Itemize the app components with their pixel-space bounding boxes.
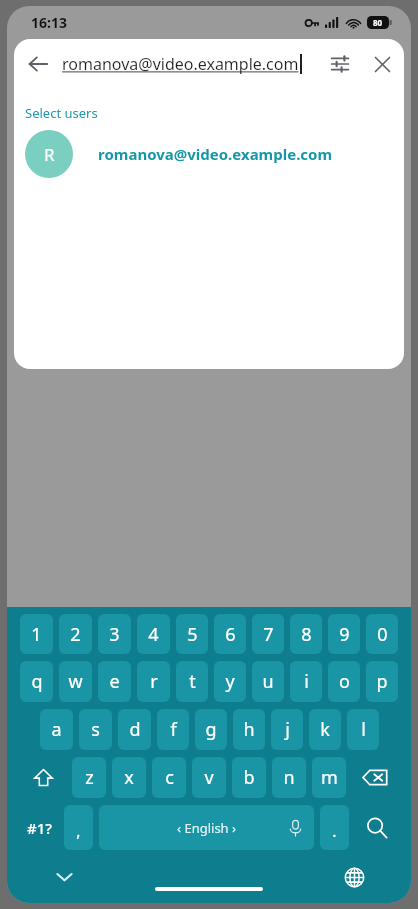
staticText: j [285, 717, 290, 742]
staticText: x [124, 765, 134, 790]
staticText: r [150, 669, 158, 694]
button[interactable]: Clear [360, 42, 404, 86]
staticText: . [332, 820, 337, 842]
button[interactable]: Change language [339, 862, 369, 892]
button[interactable]: 2 [59, 614, 92, 654]
staticText: p [376, 669, 388, 694]
button[interactable]: x [112, 757, 146, 798]
staticText: t [189, 669, 196, 694]
button[interactable]: h [233, 709, 265, 750]
staticText: z [85, 765, 94, 790]
button[interactable]: 8 [290, 614, 322, 654]
button[interactable]: 3 [98, 614, 131, 654]
button[interactable]: a [40, 709, 73, 750]
button[interactable]: Hide keyboard [49, 862, 79, 892]
staticText: 7 [263, 622, 274, 647]
button[interactable]: b [232, 757, 266, 798]
button[interactable]: 7 [252, 614, 284, 654]
staticText: w [68, 669, 83, 694]
button[interactable]: m [312, 757, 346, 798]
staticText: 8 [301, 622, 312, 647]
button[interactable]: 0 [366, 614, 398, 654]
staticText: 6 [225, 622, 236, 647]
staticText: o [339, 669, 350, 694]
button[interactable]: Shift [17, 756, 69, 799]
button[interactable]: l [347, 709, 379, 750]
staticText: Select users [25, 104, 98, 122]
button[interactable]: Space [99, 805, 314, 850]
button[interactable]: Back [14, 40, 62, 88]
staticText: f [170, 717, 177, 742]
button[interactable]: y [214, 661, 246, 702]
staticText: c [165, 765, 174, 790]
button[interactable]: . [320, 805, 349, 850]
button[interactable]: 9 [328, 614, 360, 654]
button[interactable]: s [79, 709, 112, 750]
staticText: u [262, 669, 274, 694]
staticText: h [243, 717, 255, 742]
staticText: e [109, 669, 120, 694]
button[interactable]: p [366, 661, 398, 702]
button[interactable]: q [20, 661, 53, 702]
staticText: romanova@video.example.com [98, 144, 333, 164]
button[interactable]: w [59, 661, 92, 702]
button[interactable]: g [195, 709, 227, 750]
button[interactable]: i [290, 661, 322, 702]
staticText: n [283, 765, 295, 790]
button[interactable]: k [309, 709, 341, 750]
staticText: 3 [109, 622, 120, 647]
button[interactable]: f [157, 709, 189, 750]
staticText: y [225, 669, 235, 694]
button[interactable]: 6 [214, 614, 246, 654]
staticText: 2 [70, 622, 81, 647]
staticText: g [205, 717, 217, 742]
staticText: 4 [148, 622, 159, 647]
staticText: a [51, 717, 62, 742]
staticText: q [31, 669, 43, 694]
button[interactable]: Search [352, 804, 401, 851]
staticText: d [129, 717, 141, 742]
button[interactable]: #1? [17, 804, 61, 851]
staticText: R [44, 143, 55, 166]
staticText: 16:13 [31, 13, 67, 32]
button[interactable]: Filter options [320, 44, 360, 84]
staticText: s [91, 717, 100, 742]
button[interactable]: Backspace [349, 756, 401, 799]
staticText: i [304, 669, 309, 694]
staticText: 80 [373, 17, 383, 28]
staticText: l [361, 717, 366, 742]
button[interactable]: r [137, 661, 170, 702]
button[interactable]: v [192, 757, 226, 798]
button[interactable]: t [176, 661, 208, 702]
button[interactable]: e [98, 661, 131, 702]
button[interactable]: c [152, 757, 186, 798]
button[interactable]: u [252, 661, 284, 702]
staticText: 5 [187, 622, 198, 647]
button[interactable]: 5 [176, 614, 208, 654]
button[interactable]: o [328, 661, 360, 702]
staticText: b [243, 765, 255, 790]
staticText: 1 [31, 622, 42, 647]
button[interactable]: z [72, 757, 106, 798]
staticText: 0 [377, 622, 388, 647]
button[interactable]: 4 [137, 614, 170, 654]
staticText: 9 [339, 622, 350, 647]
button[interactable]: j [271, 709, 303, 750]
button[interactable]: , [64, 805, 93, 850]
button[interactable]: R [14, 122, 404, 186]
staticText: m [321, 765, 338, 790]
button[interactable]: d [118, 709, 151, 750]
staticText: ‹ English › [177, 819, 237, 837]
staticText: k [320, 717, 330, 742]
staticText: v [204, 765, 214, 790]
staticText: romanova@video.example.com [62, 53, 299, 75]
button[interactable]: 1 [20, 614, 53, 654]
staticText: , [76, 820, 81, 842]
button[interactable]: n [272, 757, 306, 798]
staticText: #1? [27, 818, 52, 838]
